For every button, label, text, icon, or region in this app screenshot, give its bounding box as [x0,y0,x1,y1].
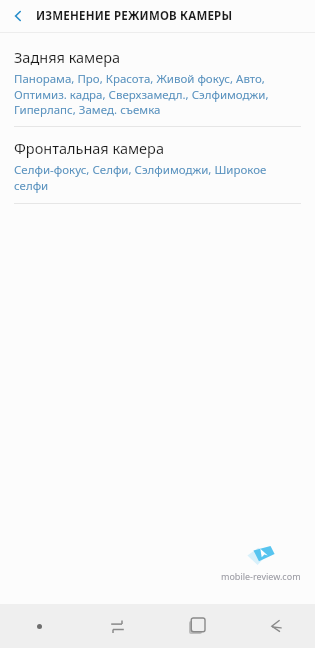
staticText: mobile-review.com [221,570,301,582]
staticText: Задняя камера [14,47,121,67]
button[interactable]: Недавние приложения [157,604,236,648]
button[interactable]: Меню [0,604,78,648]
button[interactable]: Назад [0,0,36,32]
staticText: ИЗМЕНЕНИЕ РЕЖИМОВ КАМЕРЫ [36,8,233,24]
staticText: Селфи-фокус, Селфи, Сэлфимоджи, Широкое … [14,162,289,193]
staticText: Фронтальная камера [14,138,164,158]
button[interactable]: Переключение [78,604,157,648]
button[interactable]: Назад [236,604,315,648]
staticText: Панорама, Про, Красота, Живой фокус, Авт… [14,71,289,117]
